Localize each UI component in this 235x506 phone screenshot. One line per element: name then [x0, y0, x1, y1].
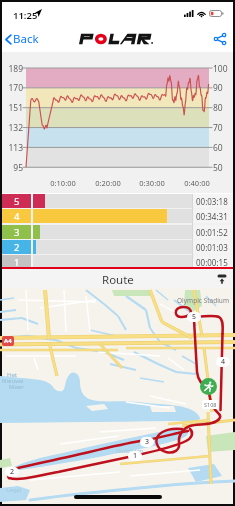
staticText: 4 — [14, 210, 20, 223]
staticText: 2 — [10, 467, 15, 477]
staticText: 0:40:00 — [177, 178, 217, 188]
staticText: 90 — [213, 82, 235, 94]
staticText: 00:03:18 — [196, 196, 228, 207]
staticText: 80 — [213, 102, 235, 114]
staticText: 1 — [133, 451, 138, 461]
staticText: Route — [102, 272, 134, 288]
staticText: Het — [7, 371, 17, 379]
staticText: 189 — [3, 63, 23, 75]
staticText: 170 — [3, 82, 23, 94]
button[interactable]: 4 — [2, 209, 233, 223]
staticText: 00:34:31 — [196, 211, 228, 222]
staticText: 151 — [3, 102, 23, 114]
staticText: 2 — [14, 241, 20, 254]
staticText: 3 — [145, 437, 150, 447]
button[interactable]: 5 — [2, 194, 233, 208]
staticText: Meer — [9, 383, 24, 391]
button[interactable]: 2 — [2, 240, 233, 254]
staticText: 50 — [213, 162, 235, 174]
button[interactable]: 1 — [2, 255, 233, 269]
staticText: 4 — [221, 357, 226, 367]
staticText: 11:25 — [13, 9, 38, 22]
button[interactable]: 3 — [2, 225, 233, 239]
staticText: 5 — [14, 195, 20, 208]
staticText: 1 — [14, 256, 20, 269]
button[interactable]: Expand map — [211, 270, 233, 286]
staticText: 70 — [213, 122, 235, 134]
button[interactable]: Route map — [2, 288, 233, 504]
staticText: 3 — [14, 226, 20, 239]
staticText: A4 — [4, 337, 12, 345]
staticText: Legal — [6, 486, 22, 494]
staticText: 95 — [3, 162, 23, 174]
staticText: 100 — [213, 63, 235, 75]
staticText: Nieuwe — [2, 377, 24, 385]
staticText: 0:30:00 — [132, 178, 172, 188]
staticText: S108 — [204, 401, 217, 408]
staticText: 00:00:15 — [196, 257, 228, 268]
button[interactable]: Share — [207, 28, 233, 50]
staticText: Back — [13, 31, 39, 47]
staticText: 132 — [3, 122, 23, 134]
staticText: 00:01:03 — [196, 242, 228, 253]
staticText: 5 — [192, 312, 197, 322]
button[interactable]: Back — [2, 28, 47, 50]
staticText: 0:10:00 — [43, 178, 83, 188]
staticText: Oudebaan — [116, 447, 144, 454]
staticText: 60 — [213, 142, 235, 154]
staticText: 0:20:00 — [88, 178, 128, 188]
staticText: 113 — [3, 142, 23, 154]
staticText: 00:01:52 — [196, 227, 228, 238]
staticText: Olympic Stadium — [177, 296, 229, 305]
button[interactable]: Running activity — [200, 378, 217, 395]
